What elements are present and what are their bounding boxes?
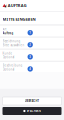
staticText: AUFTRAG: [8, 3, 27, 8]
button[interactable]: Kunde: [0, 50, 64, 61]
staticText: 1: [29, 31, 31, 34]
staticText: Bezeichnung: [2, 39, 20, 43]
staticText: Optional: [2, 68, 14, 71]
staticText: Art: [2, 27, 6, 31]
staticText: 3: [29, 55, 31, 59]
button[interactable]: Art: [0, 26, 64, 36]
staticText: SPEICHERN: [27, 109, 41, 113]
staticText: ÜBERSICHT: [24, 99, 39, 103]
staticText: MITTE EINGEBEN: [2, 17, 35, 22]
staticText: Beschreibung: [2, 64, 22, 67]
staticText: 4: [29, 67, 31, 71]
staticText: 2: [29, 43, 31, 46]
staticText: Bitte auswählen: [2, 43, 24, 47]
button[interactable]: ÜBERSICHT: [2, 97, 61, 105]
button[interactable]: Beschreibung: [0, 62, 64, 73]
staticText: Auftrag: [2, 31, 13, 35]
staticText: Optional: [2, 55, 14, 59]
staticText: Kunde: [2, 52, 12, 55]
button[interactable]: SPEICHERN: [2, 107, 61, 115]
button[interactable]: Bezeichnung: [0, 38, 64, 49]
